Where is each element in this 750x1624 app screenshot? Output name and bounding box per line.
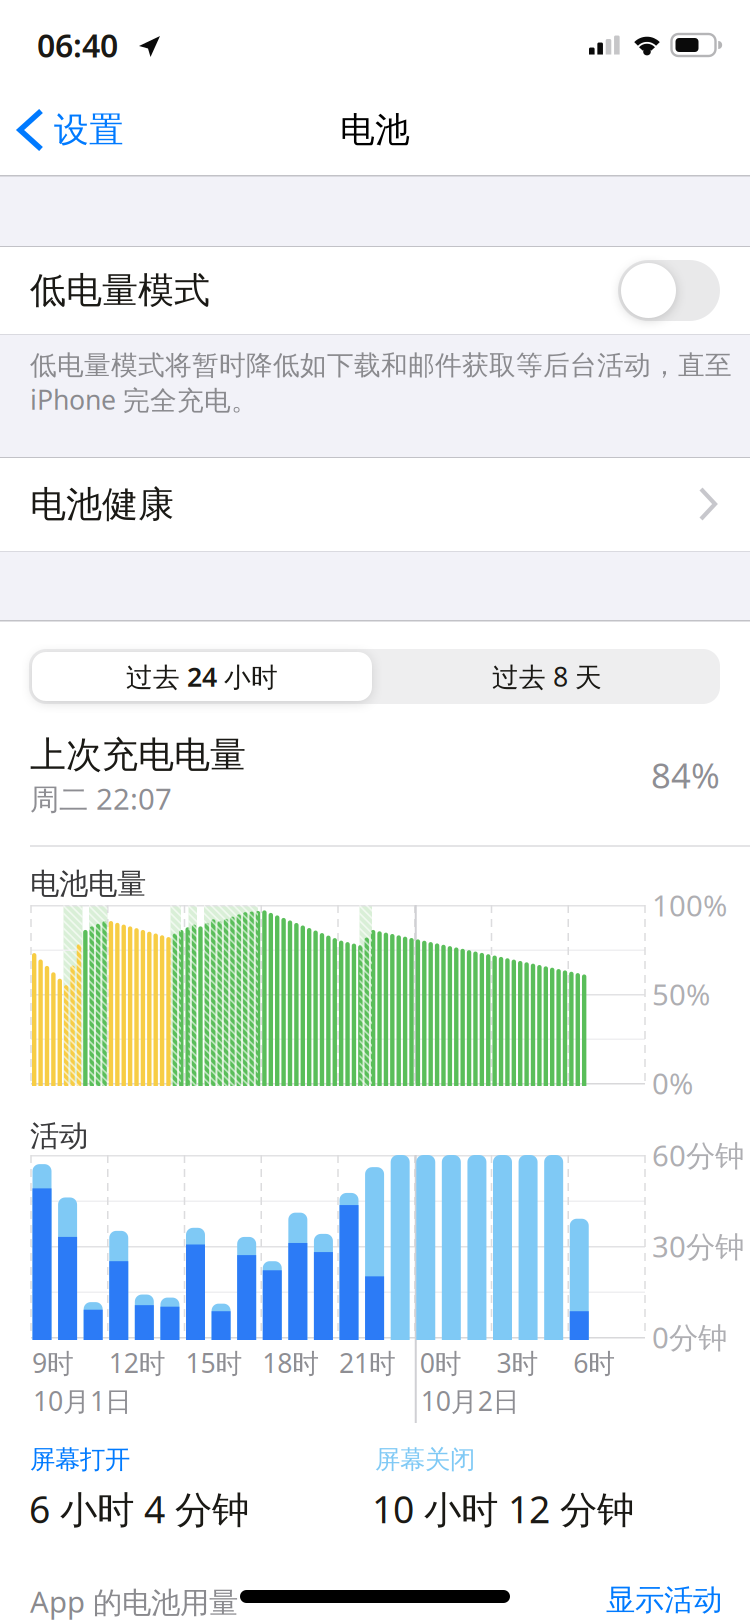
staticText: 21时: [339, 1345, 396, 1380]
staticText: 3时: [496, 1345, 538, 1380]
button[interactable]: 显示活动: [606, 1582, 722, 1618]
staticText: 周二 22:07: [30, 779, 172, 818]
staticText: 9时: [32, 1345, 74, 1380]
staticText: 10 小时 12 分钟: [372, 1484, 634, 1534]
staticText: 设置: [54, 109, 124, 151]
staticText: 100%: [652, 885, 727, 924]
staticText: 6时: [573, 1345, 615, 1380]
staticText: 84%: [651, 752, 720, 798]
staticText: 过去 8 天: [492, 659, 602, 694]
staticText: 6 小时 4 分钟: [29, 1484, 249, 1534]
staticText: 60分钟: [652, 1135, 744, 1174]
staticText: 过去 24 小时: [126, 659, 278, 694]
staticText: 电池: [340, 109, 410, 151]
button[interactable]: 设置: [16, 88, 124, 172]
staticText: 30分钟: [652, 1226, 744, 1265]
staticText: 显示活动: [606, 1582, 722, 1618]
staticText: 屏幕关闭: [375, 1444, 475, 1475]
staticText: 低电量模式将暂时降低如下载和邮件获取等后台活动，直至 iPhone 完全充电。: [30, 349, 732, 417]
staticText: 12时: [109, 1345, 166, 1380]
staticText: 上次充电电量: [30, 733, 246, 777]
button[interactable]: 过去 24 小时: [32, 652, 372, 701]
staticText: 50%: [652, 974, 710, 1013]
staticText: 18时: [262, 1345, 319, 1380]
staticText: App 的电池用量: [30, 1582, 238, 1621]
staticText: 0%: [652, 1063, 693, 1102]
staticText: 06:40: [37, 24, 118, 66]
staticText: 活动: [30, 1118, 88, 1154]
button[interactable]: 电池健康: [0, 458, 750, 551]
staticText: 电池电量: [30, 866, 146, 902]
staticText: 0时: [420, 1345, 462, 1380]
staticText: 低电量模式: [30, 268, 210, 313]
staticText: 电池健康: [30, 482, 174, 527]
button[interactable]: 过去 8 天: [377, 652, 717, 701]
button[interactable]: 低电量模式: [618, 260, 720, 321]
staticText: 15时: [185, 1345, 242, 1380]
staticText: 10月1日: [33, 1383, 132, 1418]
staticText: 屏幕打开: [30, 1444, 130, 1475]
staticText: 0分钟: [652, 1317, 727, 1356]
staticText: 10月2日: [421, 1383, 520, 1418]
